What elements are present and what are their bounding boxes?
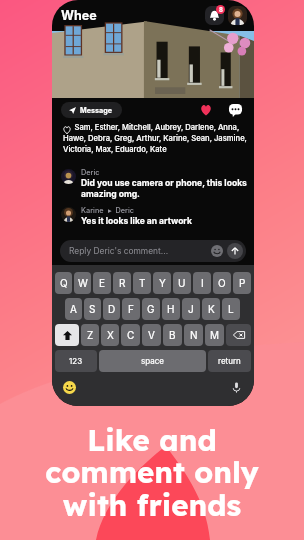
staticText: F [128, 303, 134, 315]
button[interactable]: R [113, 272, 131, 294]
button[interactable]: M [205, 324, 224, 346]
button[interactable]: Reply Deric's comment... [60, 240, 246, 262]
button[interactable]: Comments [227, 102, 243, 118]
staticText: V [148, 329, 155, 341]
staticText: Sam, Esther, Mitchell, Aubrey, Darlene, … [63, 123, 252, 154]
button[interactable]: G [142, 298, 160, 320]
button[interactable]: space [99, 350, 206, 372]
button[interactable]: V [142, 324, 161, 346]
button[interactable]: 123 [55, 350, 97, 372]
button[interactable]: Y [153, 272, 171, 294]
staticText: Whee [61, 8, 97, 23]
staticText: I [201, 277, 204, 289]
button[interactable]: Dictate [229, 380, 244, 395]
button[interactable]: Backspace [226, 324, 251, 346]
button[interactable]: Emoji [210, 244, 224, 258]
staticText: T [139, 277, 146, 289]
staticText: P [239, 277, 246, 289]
staticText: Y [159, 277, 166, 289]
button[interactable]: L [222, 298, 240, 320]
staticText: Yes it looks like an artwork [81, 216, 192, 226]
button[interactable]: X [101, 324, 119, 346]
staticText: S [89, 303, 96, 315]
staticText: K [208, 303, 215, 315]
button[interactable]: C [121, 324, 140, 346]
staticText: 8 [219, 6, 223, 13]
staticText: D [108, 303, 116, 315]
staticText: G [147, 303, 155, 315]
staticText: H [167, 303, 175, 315]
staticText: L [228, 303, 234, 315]
button[interactable]: Q [55, 272, 72, 294]
button[interactable]: return [208, 350, 251, 372]
button[interactable]: S [84, 298, 101, 320]
staticText: ▸ Deric [104, 206, 134, 215]
button[interactable]: E [93, 272, 111, 294]
staticText: Message [80, 106, 113, 115]
staticText: space [141, 356, 164, 366]
staticText: A [70, 303, 77, 315]
staticText: R [119, 277, 126, 289]
staticText: O [218, 277, 226, 289]
staticText: E [99, 277, 106, 289]
button[interactable]: N [184, 324, 203, 346]
button[interactable]: A [65, 298, 82, 320]
staticText: J [188, 303, 194, 315]
staticText: C [127, 329, 135, 341]
button[interactable]: H [162, 298, 180, 320]
button[interactable]: F [122, 298, 140, 320]
staticText: M [210, 329, 220, 341]
button[interactable]: D [103, 298, 120, 320]
button[interactable]: Notifications [205, 6, 224, 25]
staticText: Z [87, 329, 94, 341]
button[interactable]: Profile [228, 6, 247, 25]
button[interactable]: Like [198, 102, 214, 118]
staticText: U [178, 277, 186, 289]
button[interactable]: Emoji keyboard [62, 380, 77, 395]
staticText: N [190, 329, 198, 341]
button[interactable]: I [193, 272, 211, 294]
staticText: Reply Deric's comment... [69, 246, 169, 256]
staticText: return [218, 356, 241, 366]
staticText: W [78, 277, 88, 289]
staticText: Like and comment only with friends [0, 421, 304, 523]
button[interactable]: Send [227, 243, 243, 259]
staticText: Karine [81, 206, 104, 215]
button[interactable]: J [182, 298, 200, 320]
button[interactable]: B [163, 324, 182, 346]
staticText: X [107, 329, 114, 341]
button[interactable]: K [202, 298, 220, 320]
button[interactable]: U [173, 272, 191, 294]
button[interactable]: Shift [55, 324, 79, 346]
staticText: B [169, 329, 176, 341]
button[interactable]: P [233, 272, 251, 294]
button[interactable]: W [74, 272, 91, 294]
button[interactable]: Z [81, 324, 99, 346]
staticText: 123 [69, 356, 83, 366]
button[interactable]: T [133, 272, 151, 294]
staticText: Q [60, 277, 68, 289]
staticText: Deric [81, 168, 100, 177]
button[interactable]: O [213, 272, 231, 294]
staticText: Did you use camera or phone, this looks … [81, 178, 250, 199]
button[interactable]: Message [61, 102, 122, 118]
